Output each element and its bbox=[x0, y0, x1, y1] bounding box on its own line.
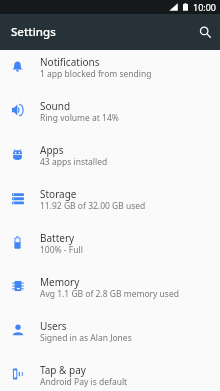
staticText: 11.92 GB of 32.00 GB used bbox=[40, 200, 146, 212]
button[interactable]: Apps bbox=[0, 138, 220, 182]
staticText: 100% - Full bbox=[40, 244, 83, 256]
staticText: Android Pay is default bbox=[40, 376, 128, 388]
staticText: Users bbox=[40, 319, 67, 333]
staticText: Signed in as Alan Jones bbox=[40, 332, 132, 344]
staticText: Tap & pay bbox=[40, 363, 86, 377]
staticText: Apps bbox=[40, 143, 64, 157]
staticText: Ring volume at 14% bbox=[40, 112, 119, 124]
button[interactable]: Tap & pay bbox=[0, 358, 220, 391]
button[interactable]: Sound bbox=[0, 94, 220, 138]
staticText: 1 app blocked from sending bbox=[40, 68, 152, 80]
staticText: Sound bbox=[40, 99, 71, 113]
staticText: 43 apps installed bbox=[40, 156, 108, 168]
staticText: Battery bbox=[40, 231, 75, 245]
staticText: Memory bbox=[40, 275, 80, 289]
button[interactable]: Storage bbox=[0, 182, 220, 226]
button[interactable]: Battery bbox=[0, 226, 220, 270]
staticText: Settings bbox=[11, 24, 56, 40]
staticText: Storage bbox=[40, 187, 77, 201]
staticText: 10:00 bbox=[193, 1, 217, 13]
staticText: Notifications bbox=[40, 55, 100, 69]
staticText: Avg 1.1 GB of 2.8 GB memory used bbox=[40, 288, 179, 300]
button[interactable]: Notifications bbox=[0, 50, 220, 94]
button[interactable]: Memory bbox=[0, 270, 220, 314]
button[interactable]: Search bbox=[184, 14, 220, 50]
button[interactable]: Users bbox=[0, 314, 220, 358]
